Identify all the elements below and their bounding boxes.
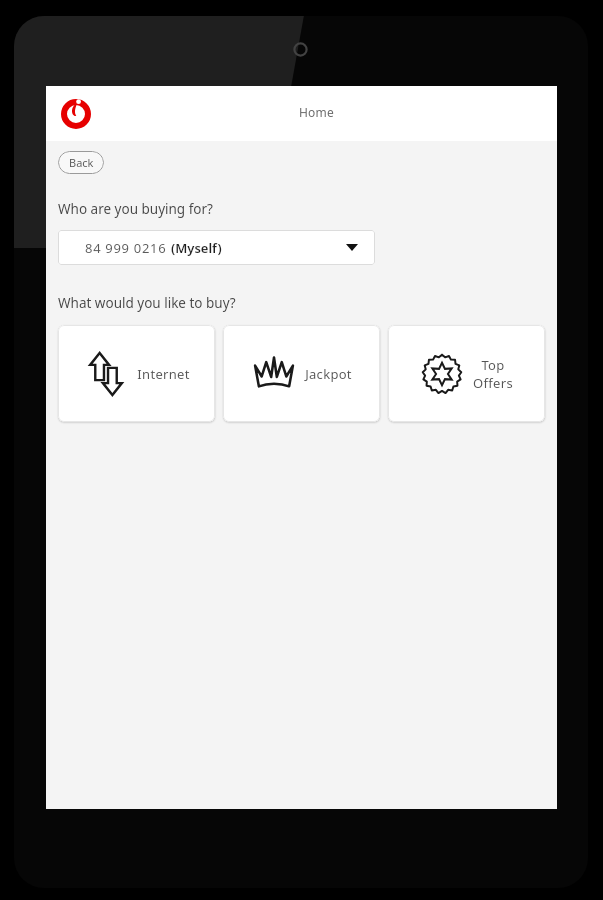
button[interactable]: Jackpot (223, 325, 380, 422)
staticText: 84 999 0216 (85, 239, 171, 257)
button[interactable]: Back (58, 151, 104, 174)
button[interactable]: 84 999 0216 (58, 230, 375, 265)
staticText: Internet (137, 365, 190, 383)
staticText: Who are you buying for? (58, 200, 213, 218)
button[interactable]: Top Offers (388, 325, 545, 422)
staticText: Top Offers (473, 356, 513, 392)
staticText: Back (69, 155, 94, 170)
staticText: Home (299, 104, 334, 120)
button[interactable]: Home (110, 86, 557, 141)
button[interactable]: Internet (58, 325, 215, 422)
staticText: Jackpot (305, 365, 352, 383)
button[interactable]: Vodafone home (59, 97, 93, 131)
staticText: (Myself) (171, 239, 222, 257)
staticText: What would you like to buy? (58, 294, 236, 312)
